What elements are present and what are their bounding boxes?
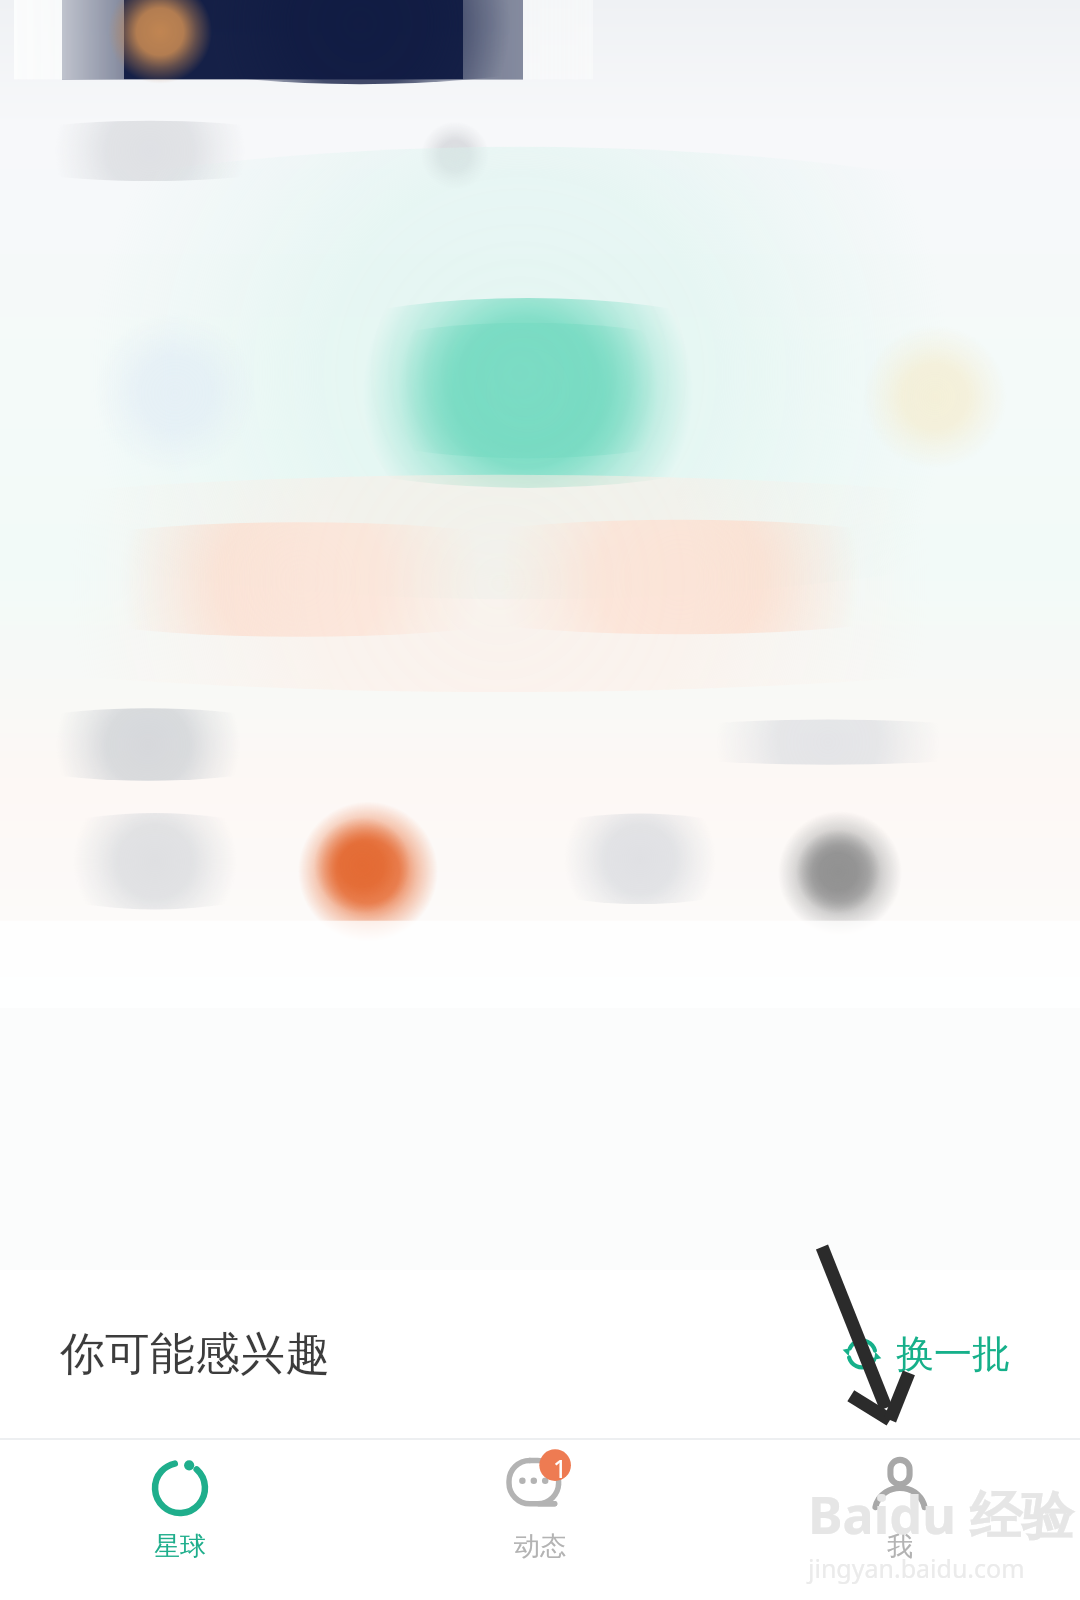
button[interactable]: 换一批 — [838, 1320, 1016, 1388]
staticText: 星球 — [154, 1530, 206, 1563]
other: 动态, 1 条未读 — [509, 1457, 571, 1519]
button[interactable]: 动态, 1 条未读 — [509, 1440, 571, 1575]
staticText: 你可能感兴趣 — [60, 1326, 330, 1383]
button[interactable]: 我 — [869, 1440, 931, 1575]
staticText: 1 — [553, 1451, 568, 1485]
staticText: 动态 — [514, 1530, 566, 1563]
staticText: 我 — [887, 1530, 913, 1563]
staticText: Baidu 经验 — [808, 1478, 1074, 1549]
staticText: jingyan.baidu.com — [808, 1551, 1025, 1585]
staticText: 换一批 — [896, 1330, 1010, 1378]
button[interactable]: 星球 — [149, 1440, 211, 1575]
